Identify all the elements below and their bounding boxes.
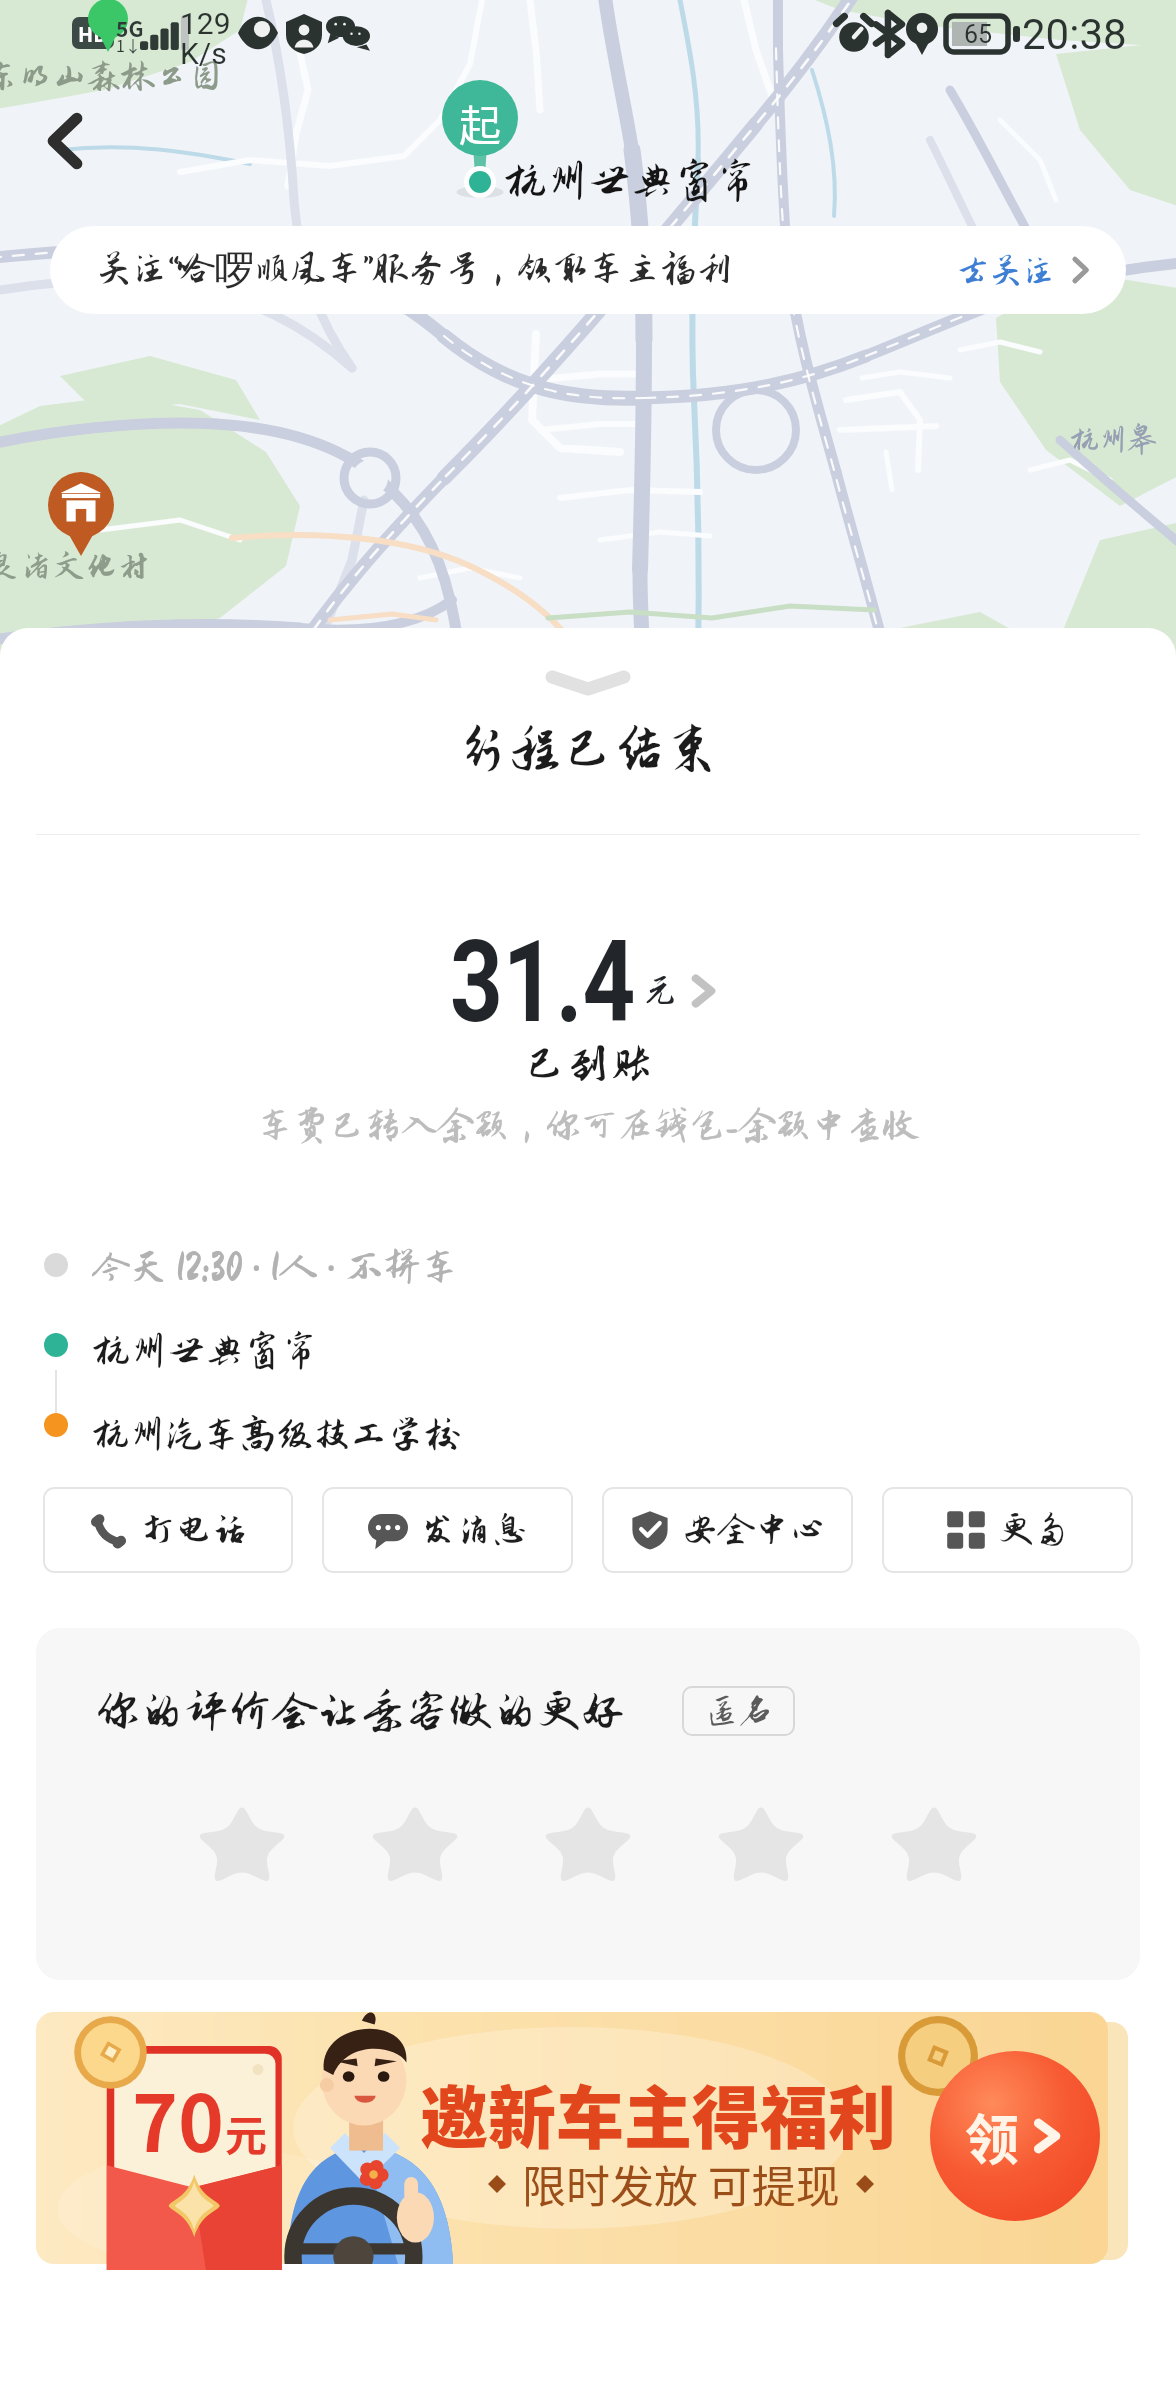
staticText: 元 xyxy=(225,2102,268,2163)
staticText: 限时发放 可提现 xyxy=(522,2152,840,2216)
staticText: 邀新车主得福利 xyxy=(420,2064,897,2162)
button[interactable]: Rate 5 stars xyxy=(887,1800,981,1888)
staticText: 去关注 xyxy=(956,252,1056,289)
staticText: 已到账 xyxy=(523,1040,653,1088)
button[interactable] xyxy=(36,2012,1108,2264)
staticText: 5G xyxy=(116,13,144,43)
staticText: 良渚文化村 xyxy=(0,548,151,584)
staticText: 65 xyxy=(964,20,993,49)
staticText: 匿名 xyxy=(706,1693,771,1729)
staticText: 元 xyxy=(643,972,678,1010)
button[interactable]: 收起面板 xyxy=(470,636,706,720)
staticText: K/s xyxy=(180,36,227,71)
button[interactable]: 安全中心 xyxy=(602,1487,853,1573)
staticText: 领 xyxy=(965,2097,1019,2175)
button[interactable]: 费用明细 31.4元 xyxy=(440,916,730,1024)
button[interactable]: Back xyxy=(20,96,110,186)
staticText: 杭州世典窗帘 xyxy=(92,1330,319,1372)
staticText: 起 xyxy=(438,92,522,153)
staticText: 你的评价会让乘客做的更好 xyxy=(96,1687,626,1736)
staticText: 31.4 xyxy=(450,916,636,1048)
staticText: 杭州世典窗帘 xyxy=(504,158,758,205)
staticText: 安全中心 xyxy=(682,1510,826,1550)
staticText: 车费已转入余额，你可在钱包-余额中查收 xyxy=(257,1106,919,1146)
staticText: 关注“哈啰顺风车”服务号，领取车主福利 xyxy=(96,245,733,295)
staticText: 129 xyxy=(180,6,231,41)
staticText: 1↓ xyxy=(116,33,141,56)
button[interactable]: 领取福利 xyxy=(930,2051,1100,2221)
button[interactable]: 关注“哈啰顺风车”服务号，领取车主福利 xyxy=(50,226,1126,314)
button[interactable]: Rate 2 stars xyxy=(368,1800,462,1888)
button[interactable]: Rate 1 stars xyxy=(195,1800,289,1888)
button[interactable]: 发消息 xyxy=(322,1487,573,1573)
staticText: 20:38 xyxy=(1022,10,1127,59)
staticText: 杭州汽车高级技工学校 xyxy=(92,1414,461,1455)
staticText: 更多 xyxy=(998,1510,1070,1550)
button[interactable]: Rate 3 stars xyxy=(541,1800,635,1888)
staticText: 杭州皋 xyxy=(1070,424,1157,456)
button[interactable]: 匿名 xyxy=(682,1686,795,1736)
staticText: 行程已结束 xyxy=(457,720,719,778)
staticText: 70 xyxy=(132,2062,225,2175)
button[interactable]: 打电话 xyxy=(43,1487,293,1573)
staticText: 东明山森林公园 xyxy=(0,58,224,96)
button[interactable]: 更多 xyxy=(882,1487,1133,1573)
staticText: 打电话 xyxy=(140,1510,248,1550)
button[interactable]: Rate 4 stars xyxy=(714,1800,808,1888)
staticText: 发消息 xyxy=(420,1510,528,1550)
staticText: 今天 12:30 · 1人 · 不拼车 xyxy=(92,1238,459,1295)
staticText: HD xyxy=(78,19,108,48)
